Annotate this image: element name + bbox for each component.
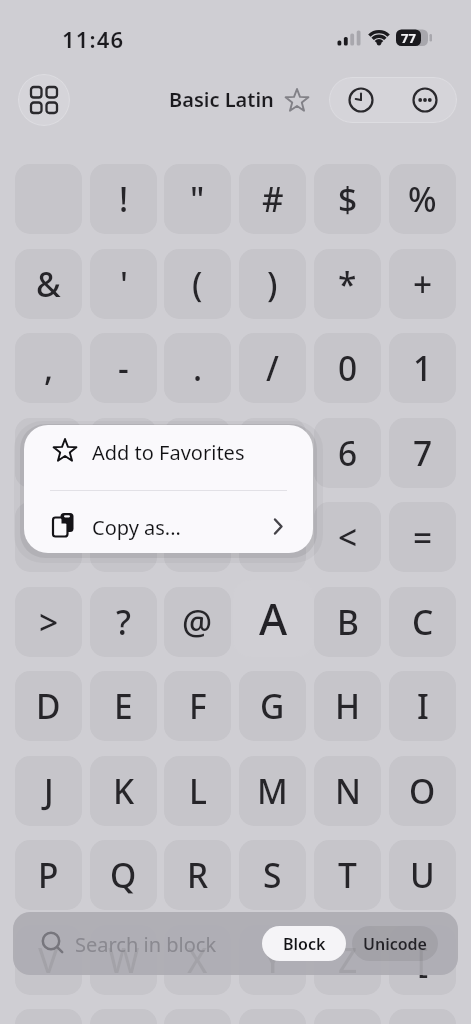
- button[interactable]: R: [164, 840, 231, 910]
- staticText: @: [182, 599, 213, 645]
- staticText: K: [113, 768, 135, 814]
- staticText: O: [409, 768, 436, 814]
- button[interactable]: D: [15, 671, 82, 741]
- button[interactable]: <: [314, 502, 381, 572]
- button[interactable]: %: [389, 164, 456, 234]
- button[interactable]: 7: [389, 418, 456, 488]
- staticText: M: [257, 768, 288, 814]
- staticText: L: [189, 768, 207, 814]
- staticText: 7: [413, 430, 433, 476]
- button[interactable]: [90, 502, 157, 572]
- button[interactable]: A: [233, 580, 314, 657]
- button[interactable]: [90, 418, 157, 488]
- button[interactable]: &: [15, 249, 82, 319]
- staticText: 11:46: [62, 24, 125, 54]
- staticText: <: [338, 514, 358, 560]
- button[interactable]: I: [389, 671, 456, 741]
- staticText: ): [267, 261, 278, 307]
- staticText: P: [38, 852, 59, 898]
- button[interactable]: G: [239, 671, 306, 741]
- button[interactable]: -: [90, 333, 157, 403]
- staticText: [: [417, 937, 429, 983]
- button[interactable]: X: [164, 925, 231, 995]
- button[interactable]: @: [164, 587, 231, 657]
- staticText: Q: [110, 852, 137, 898]
- button[interactable]: Copy as...: [24, 489, 313, 553]
- button[interactable]: ": [164, 164, 231, 234]
- button[interactable]: N: [314, 756, 381, 826]
- button[interactable]: [239, 587, 306, 657]
- button[interactable]: >: [15, 587, 82, 657]
- staticText: G: [260, 683, 285, 729]
- staticText: +: [413, 261, 433, 307]
- button[interactable]: Add to Favorites: [24, 425, 313, 489]
- button[interactable]: [239, 418, 306, 488]
- button[interactable]: .: [164, 333, 231, 403]
- button[interactable]: Q: [90, 840, 157, 910]
- button[interactable]: E: [90, 671, 157, 741]
- button[interactable]: V: [15, 925, 82, 995]
- button[interactable]: W: [90, 925, 157, 995]
- button[interactable]: ?: [90, 587, 157, 657]
- button[interactable]: M: [239, 756, 306, 826]
- staticText: Add to Favorites: [92, 439, 245, 466]
- staticText: /: [266, 345, 279, 391]
- staticText: F: [189, 683, 207, 729]
- button[interactable]: ,: [15, 333, 82, 403]
- button[interactable]: Search in block: [13, 912, 458, 975]
- button[interactable]: !: [90, 164, 157, 234]
- button[interactable]: ': [90, 249, 157, 319]
- button[interactable]: *: [314, 249, 381, 319]
- button[interactable]: J: [15, 756, 82, 826]
- staticText: ,: [44, 345, 54, 391]
- button[interactable]: [164, 418, 231, 488]
- button[interactable]: [164, 502, 231, 572]
- button[interactable]: [15, 418, 82, 488]
- button[interactable]: [239, 502, 306, 572]
- button[interactable]: 1: [389, 333, 456, 403]
- button[interactable]: P: [15, 840, 82, 910]
- button[interactable]: [18, 74, 70, 126]
- button[interactable]: B: [314, 587, 381, 657]
- button[interactable]: O: [389, 756, 456, 826]
- staticText: J: [44, 768, 54, 814]
- button[interactable]: Basic Latin: [169, 86, 310, 113]
- button[interactable]: 0: [314, 333, 381, 403]
- button[interactable]: Block: [262, 926, 346, 961]
- button[interactable]: Z: [314, 925, 381, 995]
- button[interactable]: [393, 77, 457, 123]
- button[interactable]: K: [90, 756, 157, 826]
- button[interactable]: 6: [314, 418, 381, 488]
- button[interactable]: Unicode: [352, 926, 438, 961]
- button[interactable]: [: [389, 925, 456, 995]
- button[interactable]: (: [164, 249, 231, 319]
- button[interactable]: +: [389, 249, 456, 319]
- button[interactable]: [15, 502, 82, 572]
- button[interactable]: L: [164, 756, 231, 826]
- staticText: ": [190, 176, 205, 222]
- button[interactable]: Y: [239, 925, 306, 995]
- button[interactable]: H: [314, 671, 381, 741]
- button[interactable]: T: [314, 840, 381, 910]
- button[interactable]: ): [239, 249, 306, 319]
- button[interactable]: #: [239, 164, 306, 234]
- button[interactable]: U: [389, 840, 456, 910]
- button[interactable]: /: [239, 333, 306, 403]
- button[interactable]: S: [239, 840, 306, 910]
- button[interactable]: [329, 77, 393, 123]
- button[interactable]: C: [389, 587, 456, 657]
- button[interactable]: $: [314, 164, 381, 234]
- button[interactable]: F: [164, 671, 231, 741]
- button[interactable]: =: [389, 502, 456, 572]
